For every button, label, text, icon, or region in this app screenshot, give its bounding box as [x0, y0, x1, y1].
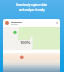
staticText: Seamlessly capture data	[16, 3, 48, 7]
staticText: and analyze it easily	[19, 8, 45, 12]
staticText: 100%	[20, 40, 31, 45]
button[interactable]: 100%	[3, 19, 60, 72]
